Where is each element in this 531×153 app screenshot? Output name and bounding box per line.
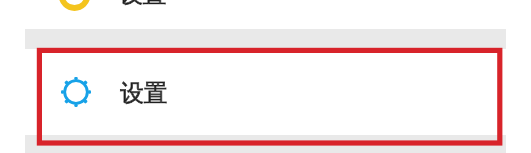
button[interactable]: App icon: [0, 0, 531, 29]
staticText: 设置: [120, 78, 168, 108]
staticText: 设置: [119, 0, 167, 8]
staticText: 设置: [119, 0, 167, 8]
other: App icon: [0, 0, 531, 29]
staticText: 设置: [120, 78, 168, 108]
button[interactable]: 设置: [0, 49, 531, 135]
